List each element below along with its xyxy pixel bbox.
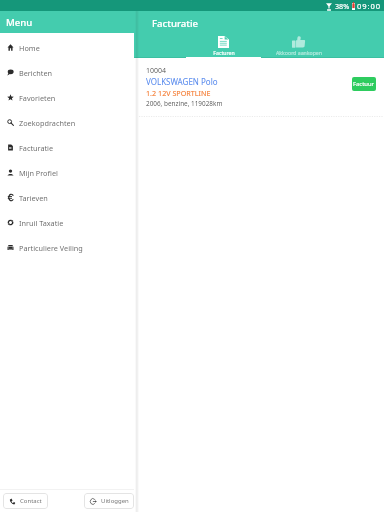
staticText: 38% [335, 1, 350, 11]
staticText: Favorieten [19, 93, 56, 103]
staticText: Facturatie [152, 17, 199, 30]
staticText: Particuliere Veiling [19, 243, 83, 253]
staticText: Home [19, 43, 40, 53]
button[interactable]: Mijn Profiel [0, 160, 134, 185]
staticText: 10004 [146, 66, 167, 76]
staticText: Tarieven [19, 193, 48, 203]
staticText: 09:00 [357, 1, 381, 11]
button[interactable]: Inruil Taxatie [0, 210, 134, 235]
staticText: Akkoord aankopen [276, 49, 322, 56]
staticText: Factuur [353, 80, 375, 88]
button[interactable]: Facturatie [0, 135, 134, 160]
staticText: 2006, benzine, 119028km [146, 99, 223, 108]
staticText: Facturen [213, 49, 235, 56]
button[interactable]: Home [0, 35, 134, 60]
staticText: Zoekopdrachten [19, 118, 76, 128]
staticText: Berichten [19, 68, 53, 78]
staticText: VOLKSWAGEN Polo [146, 76, 218, 87]
button[interactable]: Akkoord aankopen [261, 36, 336, 58]
button[interactable]: Berichten [0, 60, 134, 85]
button[interactable]: Particuliere Veiling [0, 235, 134, 260]
button[interactable]: Favorieten [0, 85, 134, 110]
staticText: Contact [20, 497, 42, 505]
staticText: 1.2 12V SPORTLINE [146, 88, 211, 98]
button[interactable]: Factuur [352, 77, 376, 91]
staticText: Menu [6, 16, 33, 29]
staticText: Uitloggen [101, 497, 129, 505]
staticText: Mijn Profiel [19, 168, 58, 178]
button[interactable]: Zoekopdrachten [0, 110, 134, 135]
button[interactable]: Uitloggen [84, 493, 134, 509]
button[interactable]: Tarieven [0, 185, 134, 210]
button[interactable]: Facturen [186, 36, 261, 58]
staticText: Inruil Taxatie [19, 218, 64, 228]
button[interactable]: Contact [3, 493, 48, 509]
staticText: Facturatie [19, 143, 54, 153]
